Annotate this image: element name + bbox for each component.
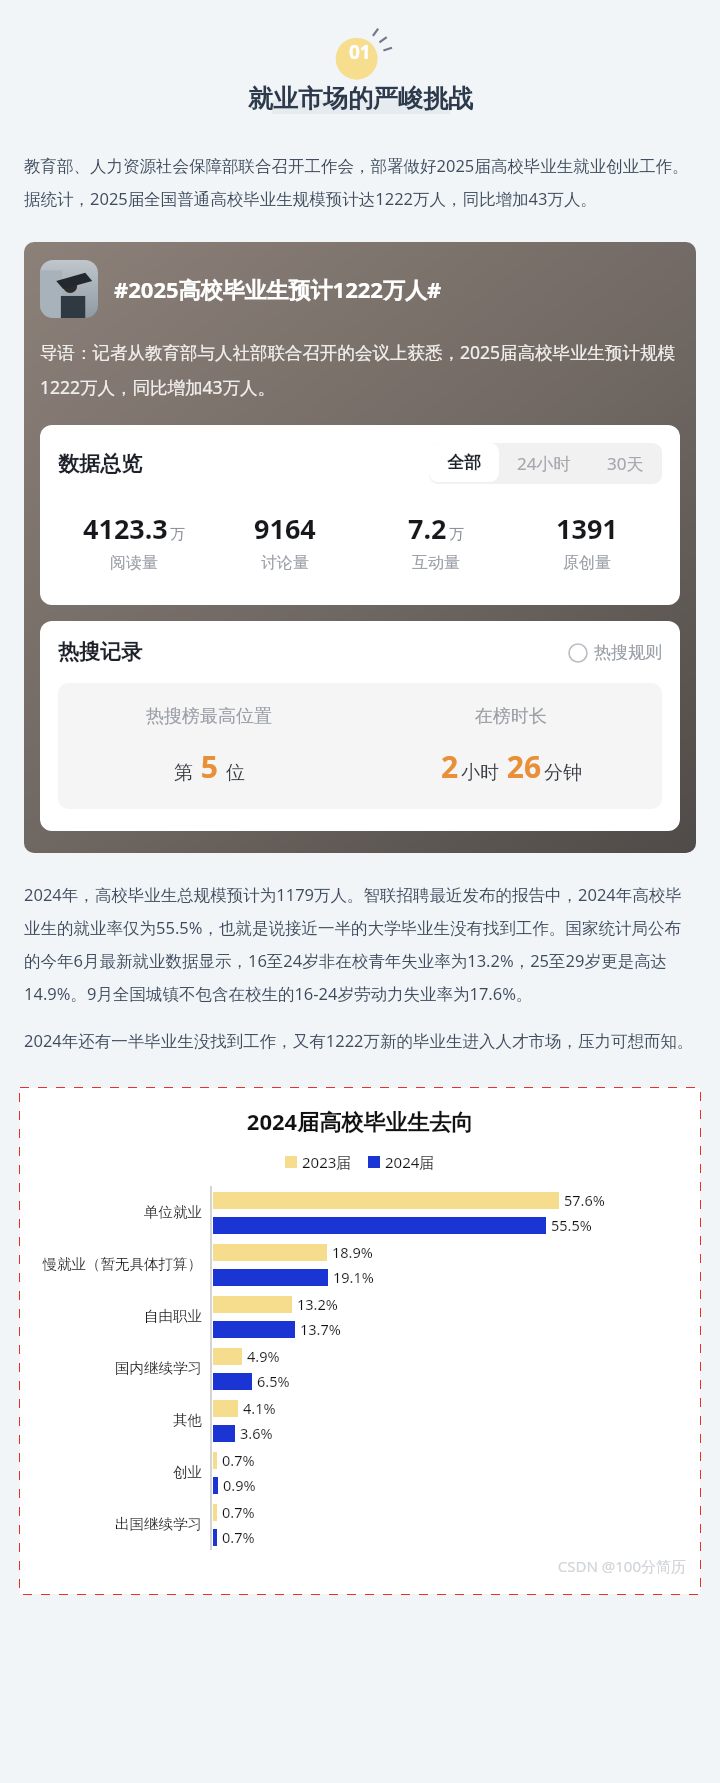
staticText: 分钟 bbox=[544, 761, 582, 785]
staticText: 55.5% bbox=[551, 1215, 592, 1235]
staticText: 4.1% bbox=[243, 1398, 276, 1418]
staticText: 2024届 bbox=[385, 1152, 435, 1172]
staticText: 万 bbox=[449, 525, 464, 544]
staticText: 讨论量 bbox=[261, 553, 309, 573]
staticText: 1391 bbox=[556, 510, 618, 547]
staticText: 第 bbox=[174, 761, 193, 785]
staticText: 慢就业（暂无具体打算） bbox=[42, 1255, 202, 1273]
staticText: 0.7% bbox=[222, 1450, 255, 1470]
staticText: 5 bbox=[193, 746, 226, 787]
staticText: 万 bbox=[170, 525, 185, 544]
staticText: 教育部、人力资源社会保障部联合召开工作会，部署做好2025届高校毕业生就业创业工… bbox=[24, 154, 696, 210]
staticText: 2 bbox=[441, 746, 459, 787]
staticText: 数据总览 bbox=[58, 451, 142, 477]
staticText: 7.2 bbox=[408, 510, 447, 547]
staticText: 热搜榜最高位置 bbox=[146, 705, 272, 728]
staticText: 19.1% bbox=[333, 1267, 374, 1287]
button[interactable]: 热搜规则 bbox=[568, 642, 662, 663]
staticText: 13.7% bbox=[300, 1319, 341, 1339]
staticText: 18.9% bbox=[332, 1242, 373, 1262]
button[interactable]: 30天 bbox=[589, 443, 662, 484]
staticText: 小时 bbox=[461, 761, 499, 785]
staticText: 阅读量 bbox=[110, 553, 158, 573]
staticText: 全部 bbox=[447, 452, 481, 473]
staticText: 13.2% bbox=[297, 1294, 338, 1314]
button[interactable]: 24小时 bbox=[499, 443, 589, 484]
staticText: 3.6% bbox=[240, 1423, 273, 1443]
staticText: 30天 bbox=[607, 452, 644, 475]
staticText: 就业市场的严峻挑战 bbox=[248, 83, 473, 114]
staticText: CSDN @100分简历 bbox=[20, 1556, 686, 1576]
staticText: 其他 bbox=[173, 1411, 202, 1429]
staticText: 9164 bbox=[254, 510, 316, 547]
staticText: 26 bbox=[499, 746, 542, 787]
staticText: 单位就业 bbox=[144, 1203, 202, 1221]
staticText: 导语：记者从教育部与人社部联合召开的会议上获悉，2025届高校毕业生预计规模12… bbox=[40, 340, 680, 399]
staticText: 互动量 bbox=[412, 553, 460, 573]
staticText: 6.5% bbox=[257, 1371, 290, 1391]
staticText: 01 bbox=[349, 39, 371, 65]
staticText: 2024年还有一半毕业生没找到工作，又有1222万新的毕业生进入人才市场，压力可… bbox=[24, 1029, 696, 1052]
staticText: 0.7% bbox=[222, 1502, 255, 1522]
staticText: #2025高校毕业生预计1222万人# bbox=[114, 274, 442, 304]
staticText: 国内继续学习 bbox=[115, 1359, 202, 1377]
staticText: 57.6% bbox=[564, 1190, 605, 1210]
staticText: 2024年，高校毕业生总规模预计为1179万人。智联招聘最近发布的报告中，202… bbox=[24, 883, 696, 1005]
staticText: 热搜记录 bbox=[58, 639, 142, 665]
staticText: 在榜时长 bbox=[475, 705, 547, 728]
staticText: 自由职业 bbox=[144, 1307, 202, 1325]
staticText: 位 bbox=[226, 761, 245, 785]
staticText: 0.9% bbox=[223, 1475, 256, 1495]
staticText: 原创量 bbox=[563, 553, 611, 573]
staticText: 2024届高校毕业生去向 bbox=[20, 1106, 700, 1136]
staticText: 24小时 bbox=[517, 452, 571, 475]
staticText: 出国继续学习 bbox=[115, 1515, 202, 1533]
staticText: 0.7% bbox=[222, 1527, 255, 1547]
button[interactable]: 全部 bbox=[429, 443, 499, 482]
staticText: 热搜规则 bbox=[594, 642, 662, 663]
staticText: 2023届 bbox=[302, 1152, 352, 1172]
staticText: 4123.3 bbox=[83, 510, 168, 547]
staticText: 4.9% bbox=[247, 1346, 280, 1366]
staticText: 创业 bbox=[173, 1463, 202, 1481]
